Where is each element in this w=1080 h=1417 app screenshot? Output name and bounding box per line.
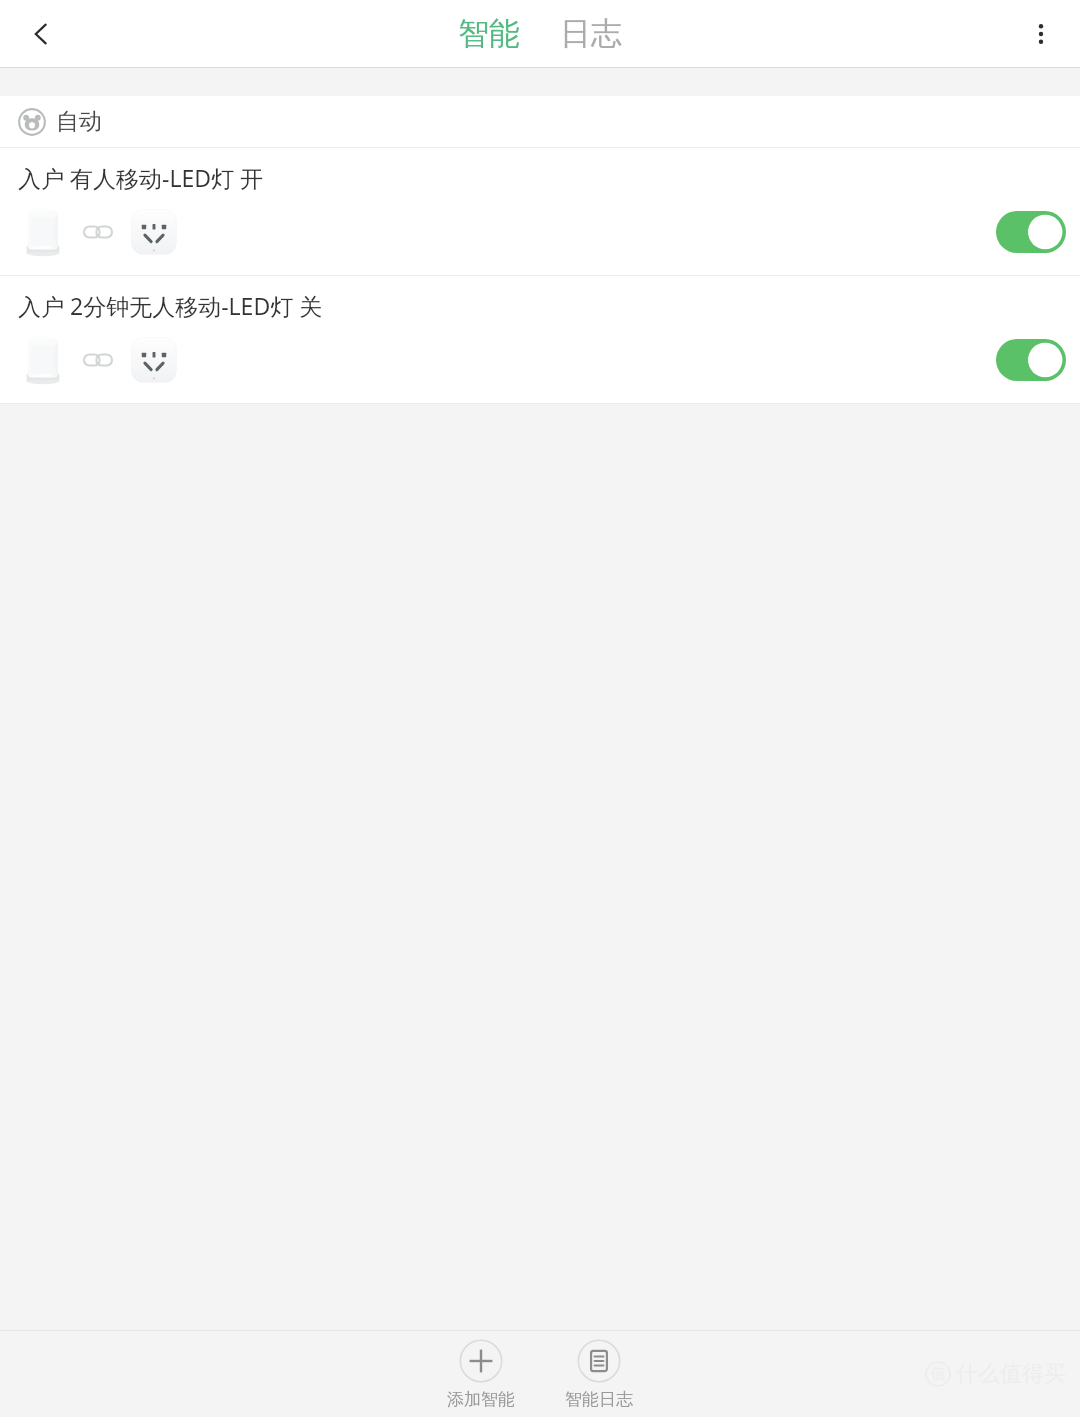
staticText: 自动 — [56, 107, 102, 136]
staticText: 入户 有人移动-LED灯 开 — [18, 162, 263, 193]
staticText: 添加智能 — [447, 1389, 515, 1410]
button[interactable]: 自动 — [0, 96, 1080, 147]
button[interactable]: 智能日志 — [551, 1335, 647, 1414]
button[interactable]: 日志 — [554, 10, 628, 57]
staticText: 入户 2分钟无人移动-LED灯 关 — [18, 290, 323, 321]
button[interactable]: 入户 有人移动-LED灯 开 — [0, 148, 1080, 276]
button[interactable]: Back — [10, 3, 72, 65]
staticText: 日志 — [560, 14, 622, 53]
button[interactable]: More options — [1010, 3, 1072, 65]
button[interactable]: 智能 — [452, 10, 526, 57]
button[interactable]: 添加智能 — [433, 1335, 529, 1414]
staticText: 智能 — [458, 14, 520, 53]
button[interactable]: Toggle automation — [996, 339, 1066, 381]
button[interactable]: 入户 2分钟无人移动-LED灯 关 — [0, 276, 1080, 404]
button[interactable]: Toggle automation — [996, 211, 1066, 253]
staticText: 智能日志 — [565, 1389, 633, 1410]
